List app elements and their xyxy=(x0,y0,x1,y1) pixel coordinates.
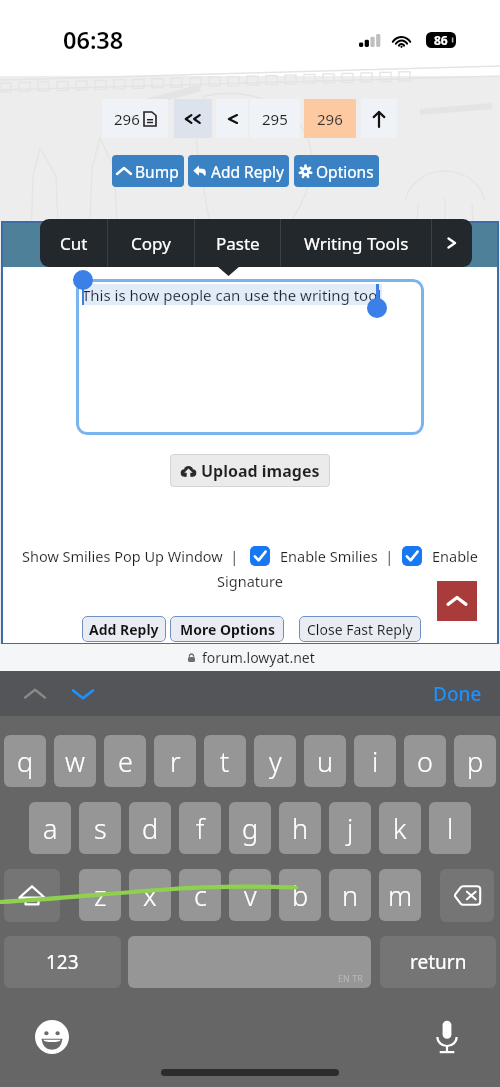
staticText: 296 xyxy=(114,109,140,129)
button[interactable]: d xyxy=(129,802,171,854)
button[interactable]: Close Fast Reply xyxy=(299,616,421,642)
button[interactable]: t xyxy=(204,735,246,787)
staticText: t xyxy=(220,743,230,780)
staticText: Upload images xyxy=(201,460,320,482)
button[interactable]: j xyxy=(329,802,371,854)
button[interactable]: Bump xyxy=(112,155,184,187)
button[interactable]: l xyxy=(429,802,471,854)
staticText: Enable Smilies | xyxy=(280,546,394,566)
button[interactable]: Cut xyxy=(40,219,107,267)
button[interactable]: Emoji xyxy=(35,1020,69,1054)
staticText: p xyxy=(467,743,484,780)
button[interactable]: Add Reply xyxy=(82,616,166,642)
staticText: This is how people can use the writing t… xyxy=(82,285,382,305)
button[interactable]: h xyxy=(279,802,321,854)
button[interactable]: p xyxy=(454,735,496,787)
button[interactable] xyxy=(174,99,212,138)
button[interactable]: More Options xyxy=(170,616,284,642)
button[interactable]: m xyxy=(379,869,421,921)
staticText: 06:38 xyxy=(63,24,124,56)
button[interactable]: v xyxy=(229,869,271,921)
staticText: Show Smilies Pop Up Window | xyxy=(22,546,239,566)
button[interactable]: b xyxy=(279,869,321,921)
button[interactable]: g xyxy=(229,802,271,854)
button[interactable]: Paste xyxy=(195,219,280,267)
staticText: l xyxy=(447,810,454,847)
button[interactable]: k xyxy=(379,802,421,854)
button[interactable]: a xyxy=(29,802,71,854)
staticText: n xyxy=(342,877,359,914)
staticText: Writing Tools xyxy=(304,232,409,255)
staticText: Add Reply xyxy=(211,161,284,182)
button[interactable] xyxy=(216,99,248,138)
staticText: r xyxy=(170,743,181,780)
button[interactable]: 123 xyxy=(4,936,121,988)
staticText: More Options xyxy=(180,620,275,639)
button[interactable]: Add Reply xyxy=(188,155,289,187)
staticText: k xyxy=(393,810,407,847)
button[interactable]: Shift xyxy=(4,869,60,922)
staticText: e xyxy=(118,743,133,780)
button[interactable]: n xyxy=(329,869,371,921)
button[interactable]: Options xyxy=(294,155,379,187)
staticText: v xyxy=(244,877,257,914)
button[interactable]: Previous field xyxy=(18,677,52,711)
staticText: Add Reply xyxy=(89,620,159,639)
staticText: Signature xyxy=(0,571,500,591)
staticText: y xyxy=(269,743,282,780)
staticText: 295 xyxy=(262,109,288,129)
staticText: Copy xyxy=(131,232,171,255)
button[interactable]: z xyxy=(79,869,121,921)
button[interactable]: Scroll to top xyxy=(437,581,477,621)
staticText: Done xyxy=(433,681,482,707)
button[interactable]: 295 xyxy=(250,99,300,138)
button[interactable]: Done xyxy=(433,681,482,707)
staticText: o xyxy=(417,743,433,780)
staticText: Close Fast Reply xyxy=(307,620,413,639)
button[interactable]: c xyxy=(179,869,221,921)
staticText: a xyxy=(43,810,58,847)
staticText: 123 xyxy=(46,949,79,975)
button[interactable]: i xyxy=(354,735,396,787)
button[interactable]: Next field xyxy=(66,677,100,711)
button[interactable]: w xyxy=(54,735,96,787)
staticText: c xyxy=(194,877,207,914)
button[interactable]: Backspace xyxy=(440,869,494,922)
staticText: Paste xyxy=(216,232,260,255)
button[interactable]: More xyxy=(432,219,472,267)
button[interactable]: u xyxy=(304,735,346,787)
button[interactable] xyxy=(361,99,397,138)
button[interactable]: Upload images xyxy=(170,454,330,487)
staticText: i xyxy=(372,743,379,780)
staticText: d xyxy=(142,810,159,847)
button[interactable]: s xyxy=(79,802,121,854)
staticText: s xyxy=(94,810,107,847)
button[interactable]: x xyxy=(129,869,171,921)
button[interactable]: Dictation xyxy=(430,1015,464,1059)
button[interactable]: Writing Tools xyxy=(281,219,431,267)
button[interactable]: f xyxy=(179,802,221,854)
staticText: m xyxy=(388,877,413,914)
staticText: w xyxy=(65,743,85,780)
staticText: Cut xyxy=(60,232,88,255)
staticText: Options xyxy=(316,161,374,182)
staticText: 86 xyxy=(434,32,448,48)
button[interactable]: return xyxy=(380,936,496,988)
staticText: u xyxy=(317,743,334,780)
staticText: g xyxy=(242,810,259,847)
staticText: h xyxy=(292,810,309,847)
button[interactable]: q xyxy=(4,735,46,787)
button[interactable]: o xyxy=(404,735,446,787)
button[interactable]: Copy xyxy=(108,219,194,267)
staticText: EN TR xyxy=(338,972,363,984)
button[interactable]: y xyxy=(254,735,296,787)
button[interactable]: r xyxy=(154,735,196,787)
button[interactable]: 296 xyxy=(102,99,168,138)
staticText: return xyxy=(410,949,467,975)
button[interactable]: e xyxy=(104,735,146,787)
staticText: z xyxy=(94,877,107,914)
button[interactable]: 296 xyxy=(304,99,356,138)
staticText: f xyxy=(196,810,205,847)
staticText: forum.lowyat.net xyxy=(202,648,315,667)
